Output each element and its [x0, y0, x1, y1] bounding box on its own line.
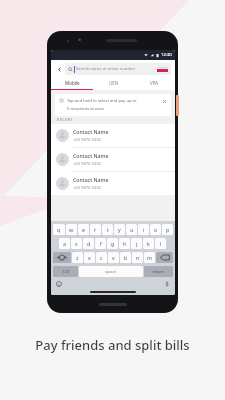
staticText: j [136, 240, 138, 247]
button[interactable]: m [144, 252, 155, 263]
button[interactable]: y [114, 224, 125, 235]
staticText: f [100, 240, 102, 247]
staticText: Contact Name [73, 152, 109, 159]
staticText: Search name or enter number [76, 66, 136, 72]
staticText: g [111, 240, 115, 247]
staticText: +65 9876 5432 [73, 161, 101, 167]
staticText: p [166, 226, 170, 233]
staticText: space [105, 269, 117, 275]
button[interactable]: VPA [134, 77, 175, 90]
button[interactable]: 123 [53, 266, 78, 277]
staticText: Contact Name [73, 128, 109, 135]
staticText: Tap and hold to select and pay up to [67, 98, 137, 104]
staticText: RECENT [57, 117, 74, 122]
button[interactable]: e [78, 224, 89, 235]
staticText: return [152, 269, 165, 275]
button[interactable]: a [59, 238, 70, 249]
button[interactable]: Contact Name [51, 148, 175, 171]
button[interactable]: b [120, 252, 131, 263]
button[interactable]: n [132, 252, 143, 263]
button[interactable]: s [71, 238, 82, 249]
staticText: v [112, 254, 115, 261]
staticText: 123 [62, 269, 70, 275]
button[interactable]: z [72, 252, 83, 263]
button[interactable]: i [138, 224, 149, 235]
button[interactable]: k [143, 238, 154, 249]
staticText: d [87, 240, 91, 247]
staticText: a [63, 240, 66, 247]
staticText: Pay friends and split bills [35, 336, 190, 354]
button[interactable]: Mobile [51, 77, 93, 90]
staticText: +65 9876 5432 [73, 137, 101, 143]
button[interactable]: o [150, 224, 161, 235]
staticText: h [123, 240, 127, 247]
button[interactable]: w [66, 224, 77, 235]
staticText: t [107, 226, 109, 233]
staticText: Mobile [65, 80, 80, 86]
button[interactable]: Contact Name [51, 172, 175, 195]
button[interactable]: d [83, 238, 94, 249]
staticText: UEN [109, 80, 119, 86]
button[interactable]: u [126, 224, 137, 235]
button[interactable]: Back [54, 64, 64, 74]
button[interactable]: Shift [53, 252, 71, 263]
staticText: y [118, 226, 121, 233]
button[interactable]: p [162, 224, 173, 235]
button[interactable]: Contact Name [51, 124, 175, 147]
staticText: i [143, 226, 145, 233]
button[interactable]: g [107, 238, 118, 249]
staticText: b [124, 254, 128, 261]
button[interactable]: Voice input [163, 280, 171, 288]
staticText: q [57, 226, 61, 233]
button[interactable]: f [95, 238, 106, 249]
staticText: k [147, 240, 150, 247]
button[interactable]: x [84, 252, 95, 263]
button[interactable]: return [144, 266, 173, 277]
staticText: z [76, 254, 79, 261]
staticText: e [82, 226, 85, 233]
button[interactable]: t [102, 224, 113, 235]
button[interactable]: r [90, 224, 101, 235]
button[interactable]: v [108, 252, 119, 263]
staticText: o [154, 226, 158, 233]
staticText: VPA [150, 80, 159, 86]
staticText: supports [158, 66, 168, 69]
staticText: r [94, 226, 97, 233]
staticText: l [160, 240, 162, 247]
button[interactable]: l [155, 238, 166, 249]
button[interactable]: Emoji [55, 280, 63, 288]
button[interactable]: space [79, 266, 143, 277]
button[interactable]: j [131, 238, 142, 249]
staticText: u [130, 226, 134, 233]
staticText: x [88, 254, 91, 261]
button[interactable]: Search name or enter number [65, 63, 171, 75]
button[interactable]: Dismiss [161, 98, 167, 104]
staticText: 5 recipients at once. [67, 106, 106, 112]
staticText: w [69, 226, 74, 233]
staticText: s [75, 240, 78, 247]
staticText: 12:30 [161, 52, 172, 58]
button[interactable]: UEN [93, 77, 134, 90]
staticText: Contact Name [73, 176, 109, 183]
staticText: c [100, 254, 103, 261]
button[interactable]: Backspace [156, 252, 173, 263]
staticText: n [136, 254, 140, 261]
staticText: +65 9876 5432 [73, 185, 101, 191]
button[interactable]: c [96, 252, 107, 263]
button[interactable]: h [119, 238, 130, 249]
button[interactable]: q [53, 224, 65, 235]
staticText: m [147, 254, 152, 261]
